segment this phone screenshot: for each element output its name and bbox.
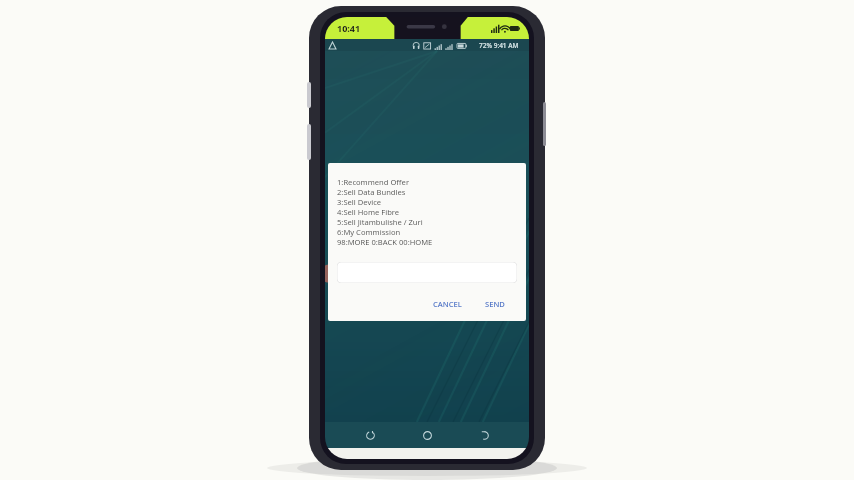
- button[interactable]: CANCEL: [426, 295, 469, 313]
- staticText: 10:41: [337, 22, 361, 34]
- staticText: 98:MORE 0:BACK 00:HOME: [337, 237, 433, 247]
- button[interactable]: Recent apps: [358, 423, 382, 447]
- button[interactable]: Back: [472, 423, 496, 447]
- staticText: 72% 9:41 AM: [479, 41, 519, 50]
- staticText: SEND: [485, 299, 505, 309]
- staticText: 1:Recommend Offer: [337, 177, 410, 187]
- button[interactable]: [337, 262, 517, 283]
- staticText: 3:Sell Device: [337, 197, 382, 207]
- staticText: 4:Sell Home Fibre: [337, 207, 400, 217]
- button[interactable]: SEND: [478, 295, 512, 313]
- staticText: CANCEL: [433, 299, 462, 309]
- staticText: 2:Sell Data Bundles: [337, 187, 406, 197]
- staticText: 5:Sell Jitambulishe / Zuri: [337, 217, 423, 227]
- staticText: 6:My Commission: [337, 227, 401, 237]
- button[interactable]: Home: [415, 423, 439, 447]
